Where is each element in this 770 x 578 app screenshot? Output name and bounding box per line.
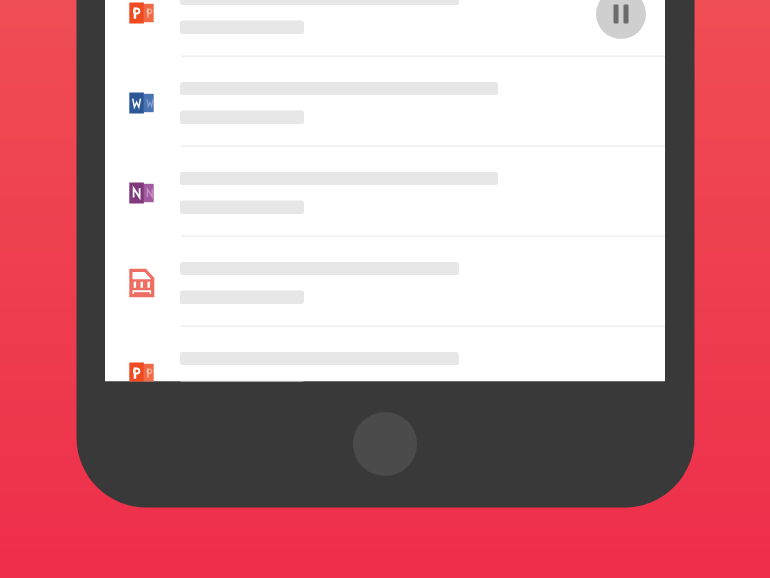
button[interactable]: Document bbox=[105, 147, 665, 237]
button[interactable]: Document bbox=[105, 237, 665, 327]
button[interactable]: Pause bbox=[596, 0, 646, 39]
button[interactable]: Document bbox=[105, 0, 665, 57]
button[interactable]: Document bbox=[105, 327, 665, 382]
button[interactable]: Document bbox=[105, 57, 665, 147]
